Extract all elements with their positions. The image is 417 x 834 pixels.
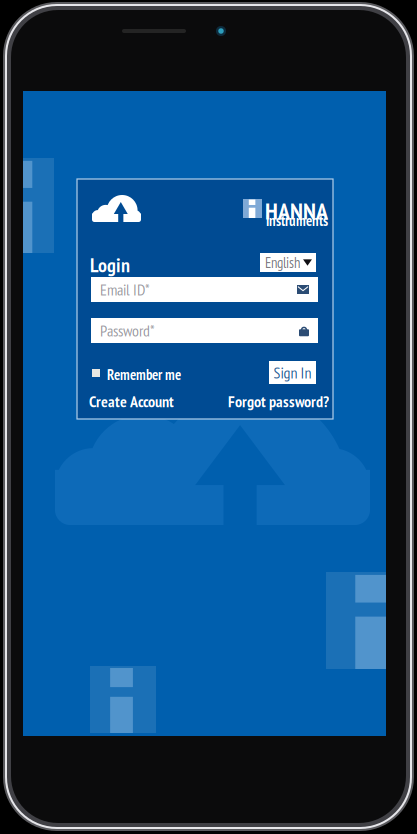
staticText: Email ID* <box>100 279 150 300</box>
button[interactable]: English <box>260 253 316 272</box>
button[interactable]: Create Account <box>89 391 174 412</box>
button[interactable]: Sign In <box>269 361 316 384</box>
staticText: English <box>265 253 300 272</box>
button[interactable]: Forgot password? <box>228 391 329 412</box>
staticText: Forgot password? <box>228 391 329 412</box>
staticText: HANNA <box>265 195 328 226</box>
button[interactable]: Remember me <box>92 365 174 381</box>
staticText: Create Account <box>89 391 174 412</box>
staticText: Login <box>90 252 130 278</box>
staticText: Remember me <box>107 365 181 384</box>
staticText: instruments <box>266 211 328 230</box>
staticText: Password* <box>100 320 155 341</box>
staticText: Sign In <box>273 362 311 383</box>
